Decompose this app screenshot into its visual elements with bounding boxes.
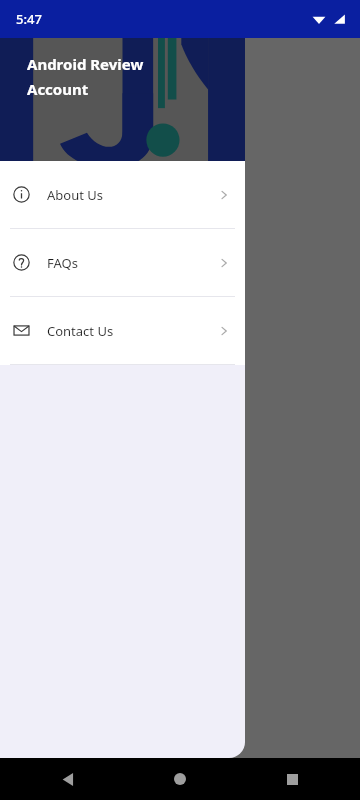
button[interactable]: FAQs bbox=[0, 229, 245, 296]
staticText: FAQs bbox=[47, 254, 78, 272]
button[interactable]: Account bbox=[270, 738, 360, 800]
button[interactable]: Recents bbox=[276, 763, 308, 795]
staticText: Android Review bbox=[27, 54, 144, 74]
staticText: 5:47 bbox=[16, 10, 42, 28]
button[interactable]: Contact Us bbox=[0, 297, 245, 364]
staticText: Contact Us bbox=[47, 322, 114, 340]
button[interactable]: Back bbox=[52, 763, 84, 795]
button[interactable] bbox=[0, 518, 360, 574]
button[interactable]: About Us bbox=[0, 161, 245, 228]
button[interactable]: Home bbox=[164, 763, 196, 795]
staticText: Account bbox=[27, 79, 89, 99]
staticText: About Us bbox=[47, 186, 104, 204]
staticText: Account bbox=[18, 109, 121, 146]
staticText: Account bbox=[296, 775, 335, 789]
